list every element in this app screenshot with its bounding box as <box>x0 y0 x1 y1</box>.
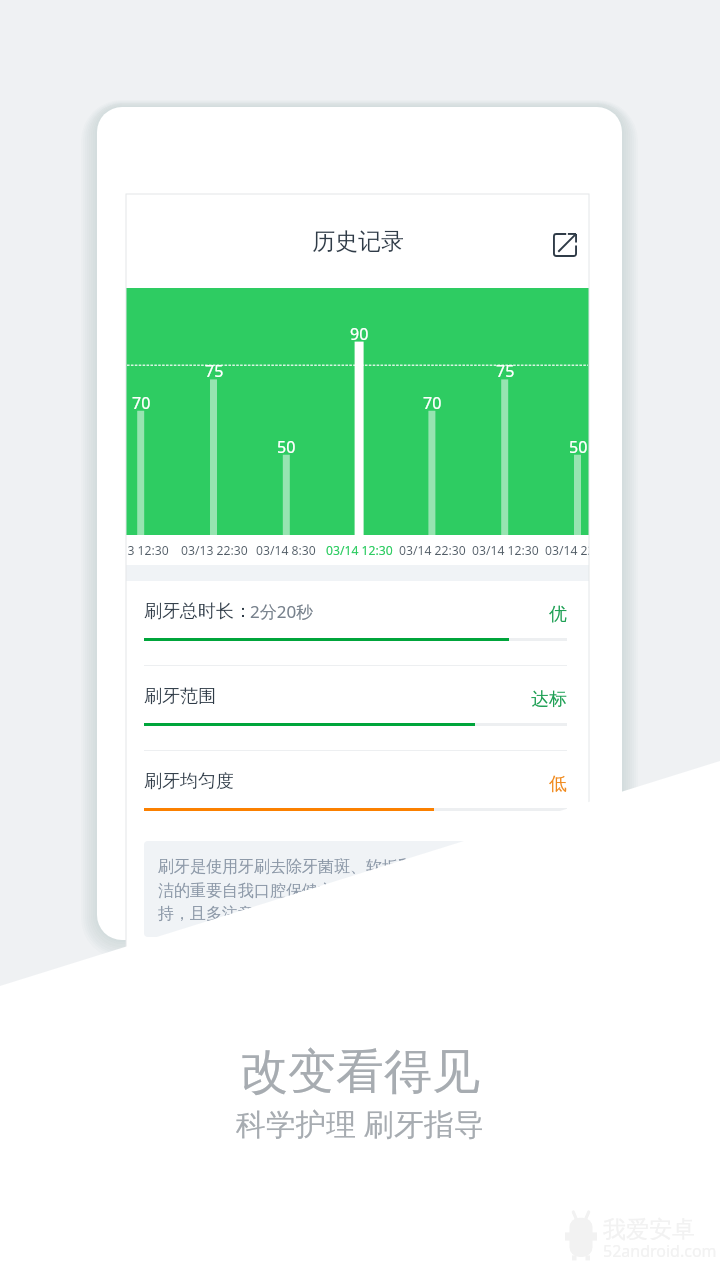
button[interactable]: Open in new window <box>543 223 587 267</box>
staticText: 03/13 22:30 <box>181 542 248 559</box>
staticText: 刷牙范围 <box>144 685 216 708</box>
staticText: 我爱安卓 <box>603 1215 695 1244</box>
staticText: 刷牙均匀度 <box>144 770 234 793</box>
staticText: 75 <box>205 360 224 382</box>
staticText: 03/13 12:30 <box>126 542 169 559</box>
staticText: 改变看得见 <box>240 1042 480 1102</box>
staticText: 03/14 22:30 <box>545 542 589 559</box>
staticText: 刷牙总时长： <box>144 600 252 623</box>
staticText: 03/14 8:30 <box>256 542 316 559</box>
staticText: 03/14 12:30 <box>472 542 539 559</box>
staticText: 70 <box>132 392 151 414</box>
staticText: 优 <box>549 603 567 626</box>
staticText: 52android.com <box>603 1240 717 1262</box>
staticText: 03/14 12:30 <box>326 542 393 559</box>
staticText: 低 <box>549 773 567 796</box>
staticText: 刷牙是使用牙刷去除牙菌斑、软垢和食物残渣，保持口腔清 洁的重要自我口腔保健方法。… <box>158 857 571 923</box>
staticText: 50 <box>569 436 588 458</box>
staticText: 75 <box>496 360 515 382</box>
staticText: 70 <box>423 392 442 414</box>
staticText: 90 <box>350 323 369 345</box>
staticText: 03/14 22:30 <box>399 542 466 559</box>
staticText: 50 <box>277 436 296 458</box>
staticText: 历史记录 <box>312 227 404 256</box>
staticText: 2分20秒 <box>250 600 314 623</box>
staticText: 科学护理 刷牙指导 <box>236 1103 484 1144</box>
staticText: 达标 <box>531 688 567 711</box>
